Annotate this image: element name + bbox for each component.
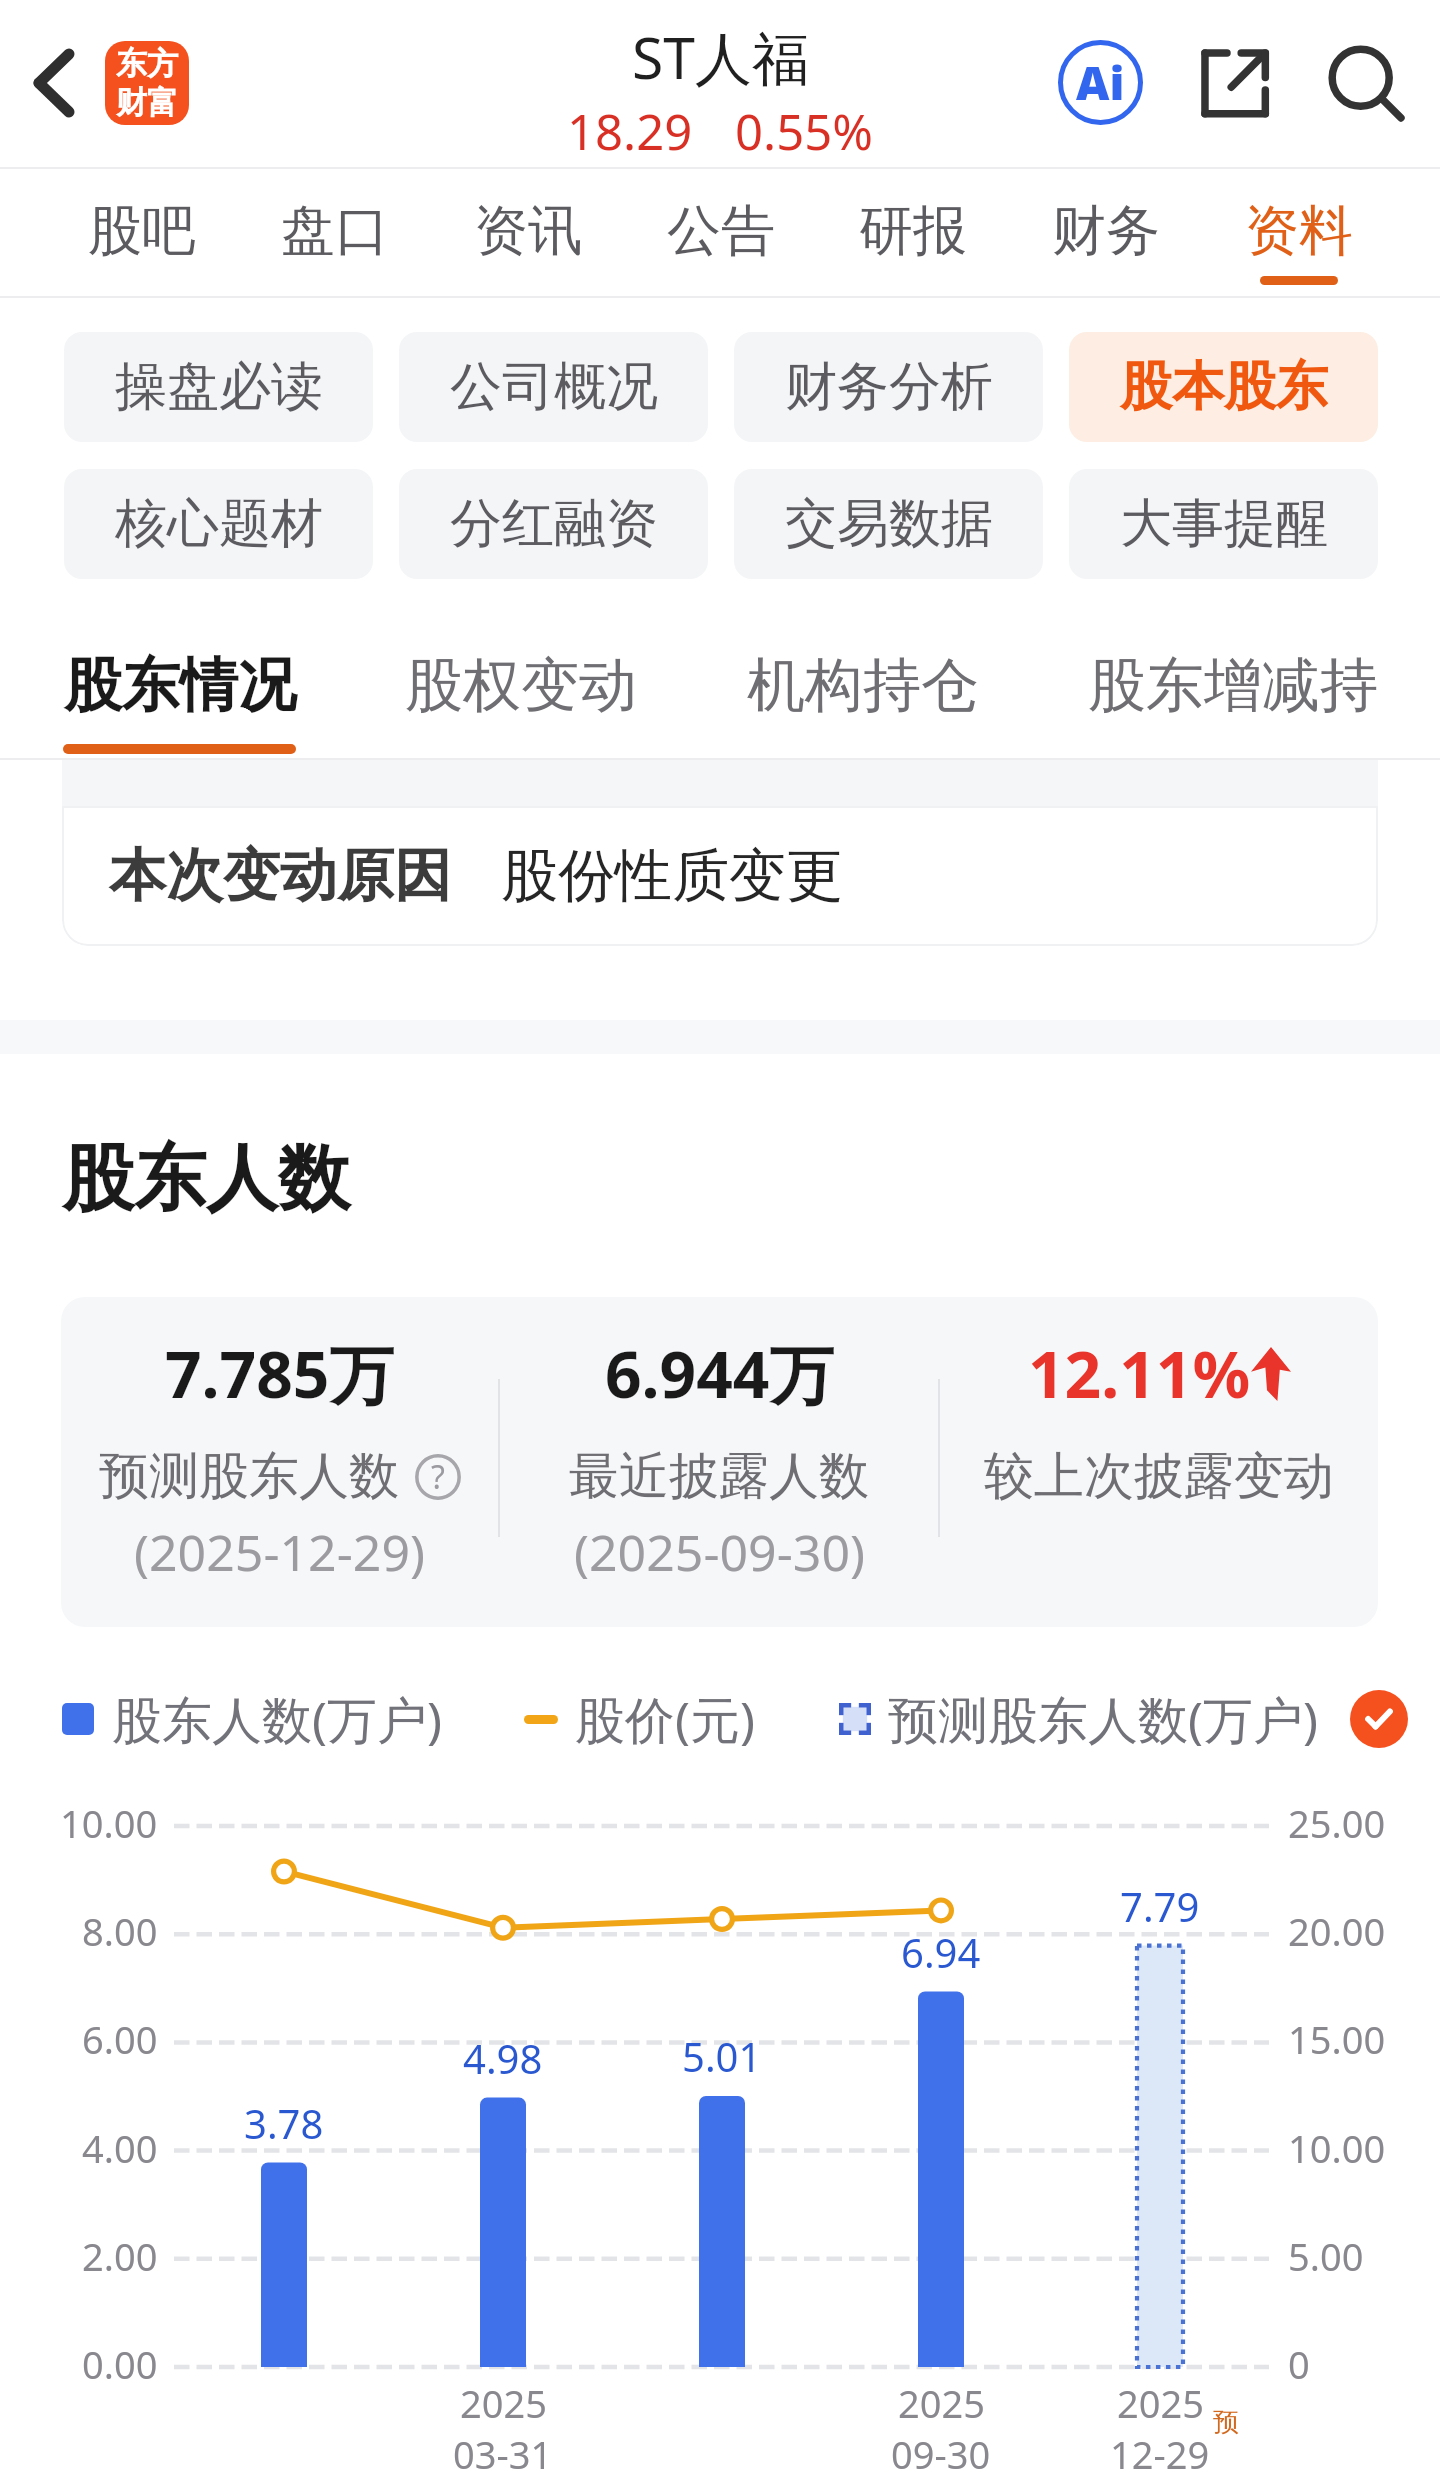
- button[interactable]: 研报: [859, 169, 967, 298]
- button[interactable]: 大事提醒: [1069, 469, 1378, 579]
- staticText: 预: [1213, 2406, 1239, 2439]
- button[interactable]: Back: [0, 29, 108, 137]
- staticText: 机构持仓: [747, 649, 979, 722]
- staticText: 18.29: [567, 98, 693, 165]
- staticText: ST人福: [632, 18, 809, 96]
- staticText: 大事提醒: [1120, 491, 1328, 557]
- staticText: 2.00: [82, 2230, 158, 2282]
- staticText: 股价(元): [575, 1685, 755, 1753]
- button[interactable]: 资讯: [474, 169, 582, 298]
- staticText: 15.00: [1288, 2013, 1386, 2065]
- button[interactable]: 核心题材: [64, 469, 373, 579]
- staticText: (2025-12-29): [134, 1518, 425, 1586]
- staticText: 操盘必读: [115, 354, 323, 420]
- staticText: 03-31: [453, 2428, 553, 2480]
- button[interactable]: 本次变动原因: [62, 806, 1378, 946]
- staticText: 2025: [460, 2377, 547, 2429]
- button[interactable]: 公司概况: [399, 332, 708, 442]
- button[interactable]: 股本股东: [1069, 332, 1378, 442]
- button[interactable]: 资料: [1245, 169, 1353, 298]
- button[interactable]: AI assistant: [1035, 17, 1166, 148]
- staticText: 6.944万: [605, 1330, 834, 1417]
- staticText: 2025: [898, 2377, 985, 2429]
- staticText: 20.00: [1288, 1905, 1386, 1957]
- staticText: 资讯: [474, 197, 582, 265]
- staticText: 股权变动: [405, 649, 637, 722]
- staticText: 12-29: [1110, 2428, 1210, 2480]
- staticText: 5.01: [682, 2029, 762, 2083]
- button[interactable]: Share: [1170, 17, 1301, 148]
- staticText: 股吧: [88, 197, 196, 265]
- staticText: 6.00: [82, 2013, 158, 2065]
- staticText: 12.11%: [1028, 1330, 1251, 1417]
- staticText: 4.98: [463, 2031, 543, 2085]
- button[interactable]: 盘口: [281, 169, 389, 298]
- staticText: 分红融资: [450, 491, 658, 557]
- staticText: 较上次披露变动: [984, 1445, 1334, 1508]
- button[interactable]: 财务: [1052, 169, 1160, 298]
- staticText: 2025: [1117, 2377, 1204, 2429]
- staticText: 东方: [116, 44, 178, 83]
- staticText: 财务: [1052, 197, 1160, 265]
- button[interactable]: Toggle legend: [1350, 1690, 1408, 1748]
- button[interactable]: 交易数据: [734, 469, 1043, 579]
- button[interactable]: 公告: [667, 169, 775, 298]
- staticText: 股东增减持: [1088, 649, 1378, 722]
- button[interactable]: 股吧: [88, 169, 196, 298]
- staticText: 4.00: [82, 2122, 158, 2174]
- staticText: 股东人数(万户): [112, 1685, 442, 1753]
- staticText: 资料: [1245, 197, 1353, 265]
- staticText: 7.79: [1120, 1879, 1200, 1933]
- button[interactable]: 股权变动: [405, 620, 637, 760]
- staticText: 25.00: [1288, 1797, 1386, 1849]
- staticText: 7.785万: [165, 1330, 394, 1417]
- staticText: ?: [431, 1455, 445, 1499]
- staticText: 0.55%: [735, 98, 873, 165]
- staticText: 09-30: [891, 2428, 991, 2480]
- staticText: 公司概况: [450, 354, 658, 420]
- staticText: 0: [1288, 2338, 1310, 2390]
- staticText: 3.78: [244, 2096, 324, 2150]
- staticText: Ai: [1076, 51, 1125, 114]
- staticText: 10.00: [1288, 2122, 1386, 2174]
- staticText: 本次变动原因: [109, 840, 451, 912]
- staticText: 最近披露人数: [569, 1445, 869, 1508]
- button[interactable]: East Money: [105, 41, 189, 125]
- staticText: 0.00: [82, 2338, 158, 2390]
- staticText: 公告: [667, 197, 775, 265]
- staticText: 交易数据: [785, 491, 993, 557]
- staticText: 10.00: [60, 1797, 158, 1849]
- staticText: 财务分析: [785, 354, 993, 420]
- staticText: 股本股东: [1120, 354, 1328, 420]
- button[interactable]: 财务分析: [734, 332, 1043, 442]
- staticText: 6.94: [901, 1925, 981, 1979]
- staticText: 股东情况: [64, 649, 296, 722]
- button[interactable]: 机构持仓: [747, 620, 979, 760]
- staticText: 预测股东人数(万户): [888, 1685, 1318, 1753]
- staticText: 研报: [859, 197, 967, 265]
- staticText: 5.00: [1288, 2230, 1364, 2282]
- staticText: 8.00: [82, 1905, 158, 1957]
- button[interactable]: 股东增减持: [1088, 620, 1378, 760]
- staticText: (2025-09-30): [574, 1518, 865, 1586]
- staticText: 核心题材: [115, 491, 323, 557]
- button[interactable]: 股东情况: [63, 620, 296, 760]
- button[interactable]: 分红融资: [399, 469, 708, 579]
- staticText: 盘口: [281, 197, 389, 265]
- staticText: 预测股东人数: [99, 1445, 399, 1508]
- button[interactable]: 操盘必读: [64, 332, 373, 442]
- staticText: 财富: [116, 83, 178, 122]
- staticText: 股东人数: [62, 1134, 350, 1225]
- button[interactable]: Search: [1300, 17, 1431, 148]
- staticText: 股份性质变更: [501, 840, 843, 912]
